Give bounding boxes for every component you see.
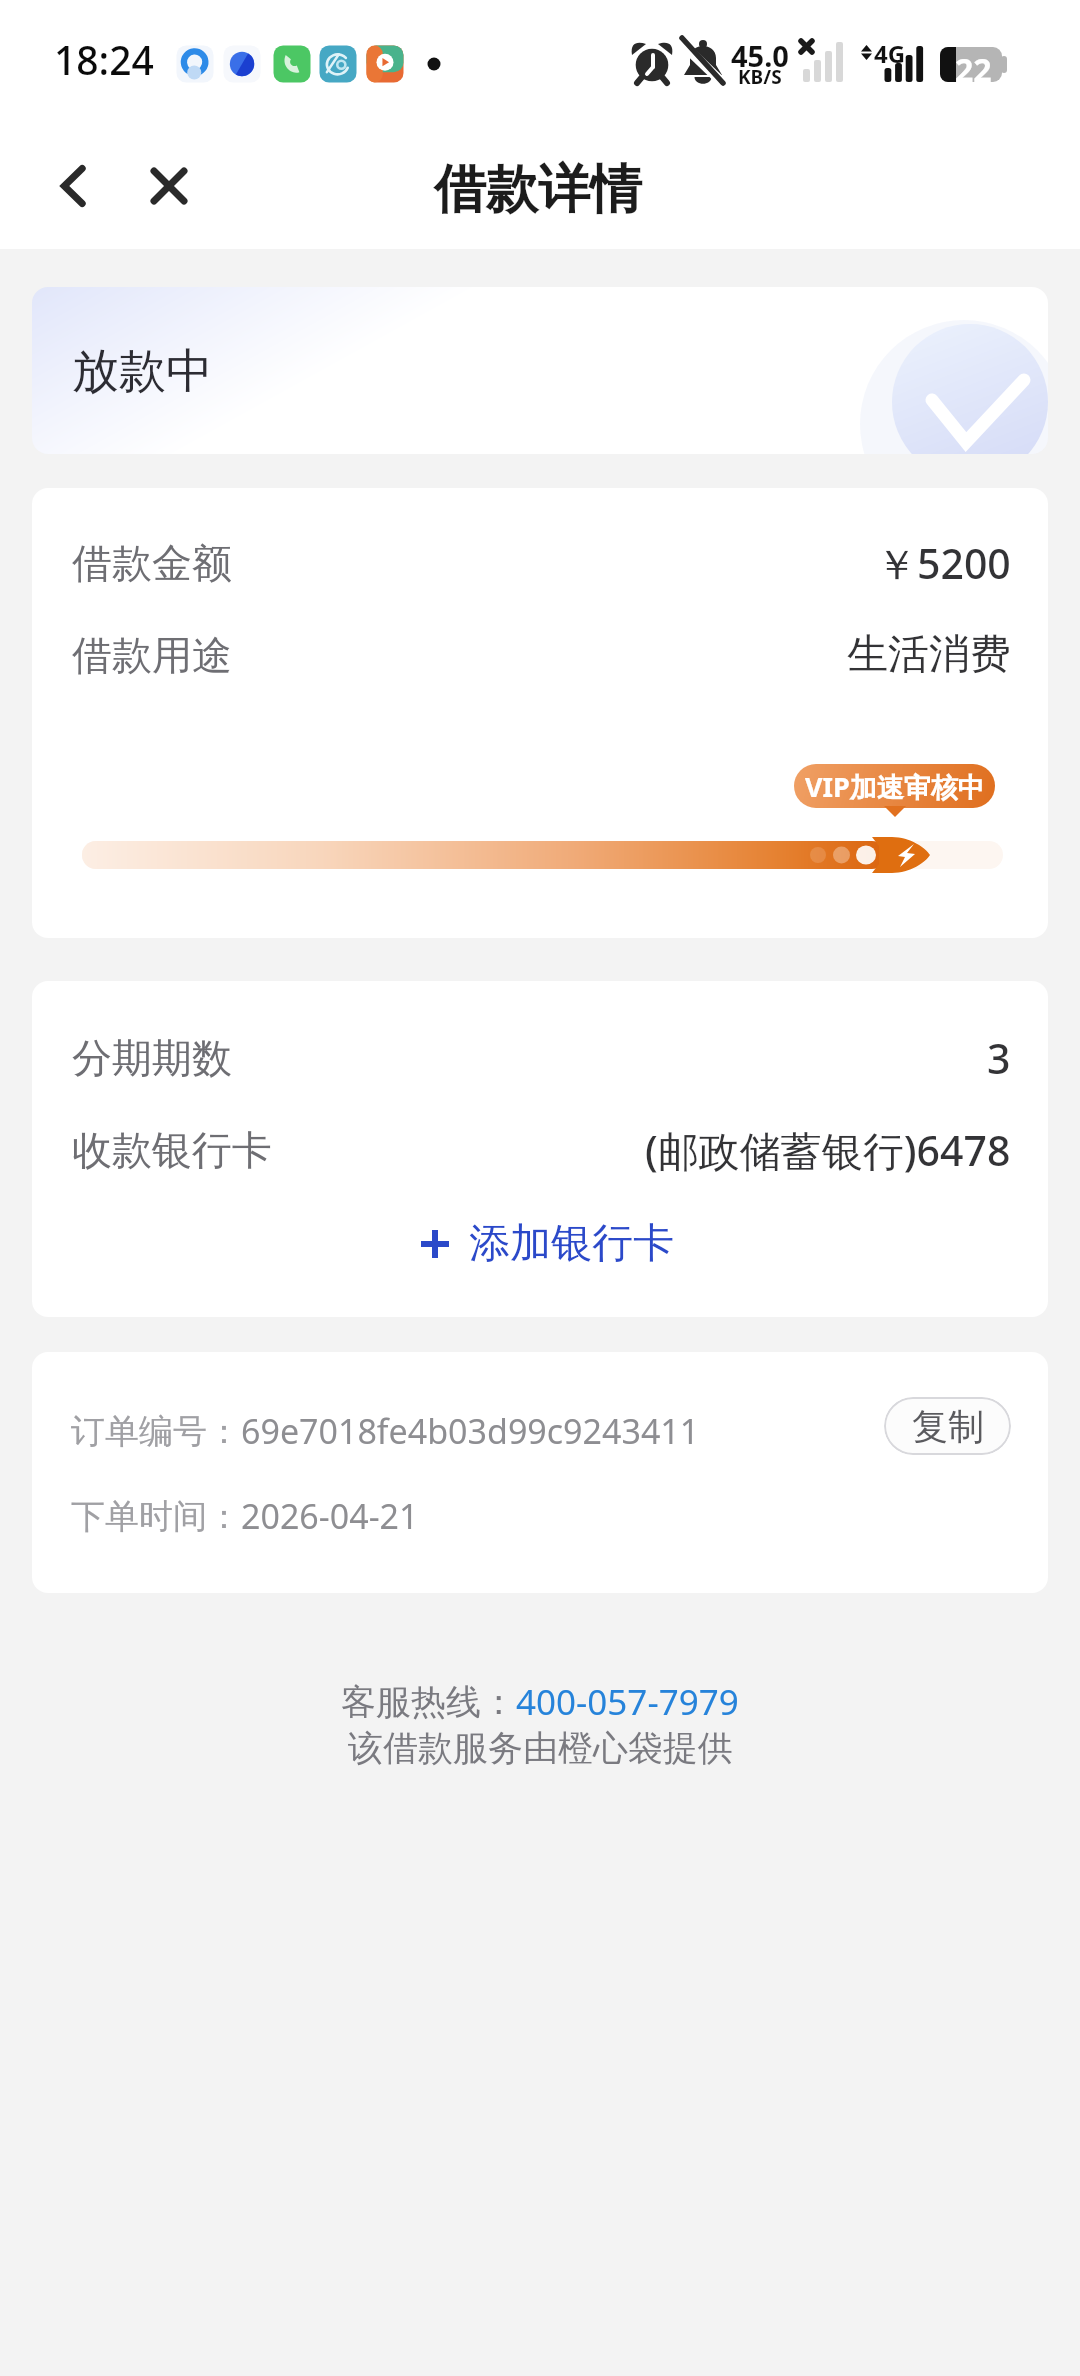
- staticText: 添加银行卡: [469, 1218, 674, 1270]
- staticText: 分期期数: [72, 1033, 232, 1083]
- staticText: 69e7018fe4b03d99c9243411: [241, 1408, 700, 1454]
- staticText: ￥5200: [876, 535, 1011, 591]
- button[interactable]: Back: [38, 151, 108, 221]
- staticText: 放款中: [72, 342, 213, 401]
- staticText: VIP加速审核中: [805, 768, 985, 805]
- staticText: 3: [987, 1030, 1011, 1086]
- staticText: 18:24: [54, 33, 154, 86]
- staticText: 2026-04-21: [241, 1493, 419, 1539]
- staticText: 借款金额: [72, 538, 232, 588]
- staticText: 22: [955, 48, 992, 92]
- staticText: 借款用途: [72, 630, 232, 680]
- button[interactable]: 添加银行卡: [399, 1204, 696, 1284]
- button[interactable]: 400-057-7979: [516, 1678, 739, 1726]
- staticText: 4G: [874, 37, 906, 70]
- button[interactable]: Close: [134, 151, 204, 221]
- staticText: 借款详情: [434, 157, 642, 223]
- staticText: KB/S: [738, 64, 782, 90]
- staticText: 复制: [912, 1404, 984, 1449]
- staticText: 客服热线：: [341, 1680, 516, 1724]
- staticText: (邮政储蓄银行)6478: [645, 1122, 1011, 1178]
- staticText: 收款银行卡: [72, 1125, 272, 1175]
- staticText: 订单编号：: [71, 1410, 241, 1453]
- button[interactable]: 复制: [884, 1397, 1011, 1455]
- staticText: 45.0: [731, 36, 789, 75]
- staticText: 该借款服务由橙心袋提供: [348, 1726, 733, 1770]
- staticText: 生活消费: [847, 629, 1011, 681]
- staticText: 下单时间：: [71, 1495, 241, 1538]
- button[interactable]: 放款中: [32, 287, 1048, 454]
